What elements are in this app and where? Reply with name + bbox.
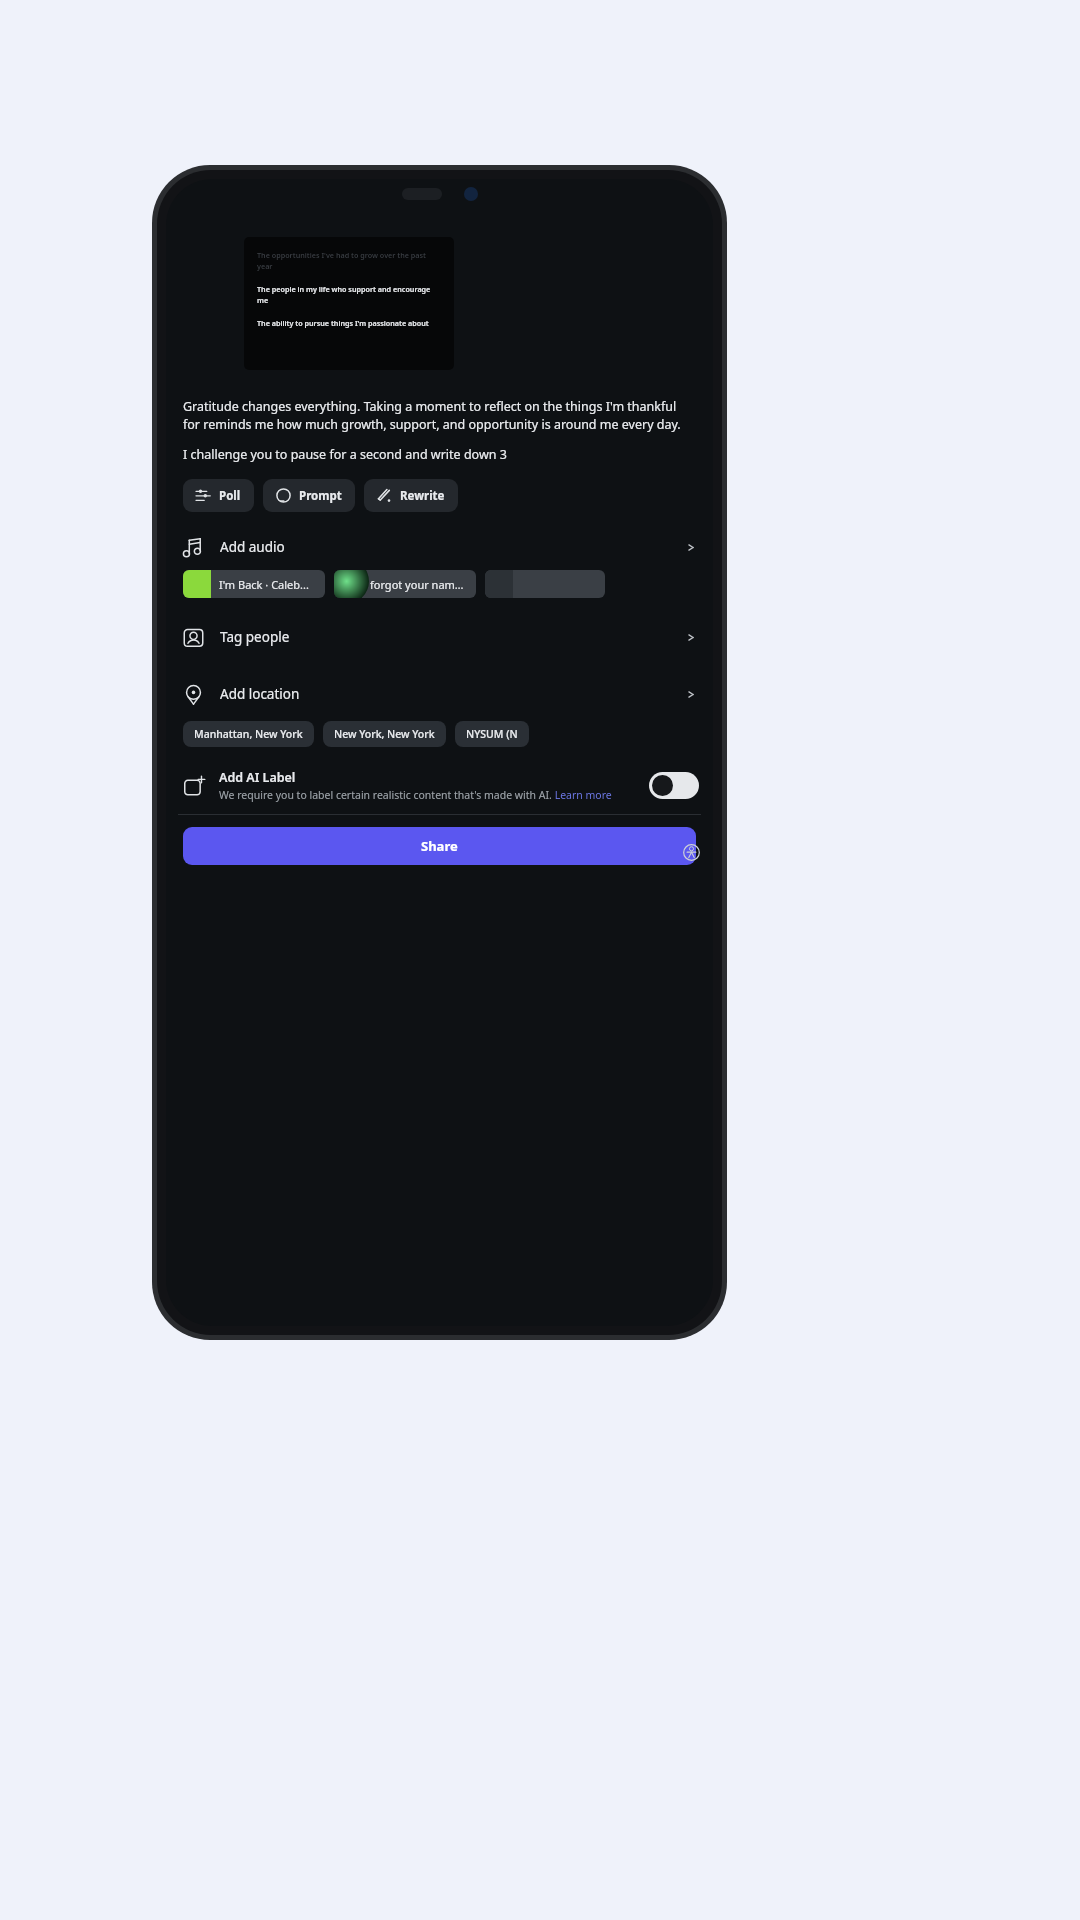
button[interactable]: Manhattan, New York (183, 721, 314, 747)
staticText: New York, New York (334, 727, 435, 741)
button[interactable]: New York, New York (323, 721, 446, 747)
button[interactable]: Share (183, 827, 696, 865)
button[interactable]: Rewrite (364, 479, 458, 512)
staticText: The ability to pursue things I'm passion… (257, 318, 429, 328)
staticText: Share (421, 837, 458, 855)
button[interactable]: Add location (166, 677, 713, 711)
staticText: Gratitude changes everything. Taking a m… (183, 398, 696, 433)
staticText: Tag people (220, 628, 684, 646)
button[interactable]: I'm Back · Caleb... (183, 570, 325, 598)
button[interactable]: Poll (183, 479, 254, 512)
staticText: forgot your name... (370, 577, 468, 592)
other: Accessibility (683, 844, 700, 861)
staticText: Add audio (220, 538, 684, 556)
button[interactable]: NYSUM (N (455, 721, 529, 747)
staticText: Manhattan, New York (194, 727, 303, 741)
button[interactable]: Add audio (166, 530, 713, 564)
staticText: The opportunities I've had to grow over … (257, 250, 442, 271)
staticText: The people in my life who support and en… (257, 284, 442, 305)
button[interactable]: Add AI Label toggle (649, 772, 699, 799)
staticText: I'm Back · Caleb... (219, 577, 309, 592)
staticText: Add location (220, 685, 684, 703)
staticText: Prompt (299, 488, 342, 504)
staticText: Rewrite (400, 488, 445, 504)
button[interactable]: forgot your name... (334, 570, 476, 598)
staticText: Poll (219, 488, 241, 504)
button[interactable] (485, 570, 605, 598)
staticText: NYSUM (N (466, 727, 518, 741)
staticText: Add AI Label (219, 769, 296, 786)
staticText: We require you to label certain realisti… (219, 788, 612, 802)
button[interactable]: Prompt (263, 479, 355, 512)
staticText: I challenge you to pause for a second an… (183, 446, 507, 463)
button[interactable]: Tag people (166, 620, 713, 654)
button[interactable]: Add AI Label (166, 767, 713, 810)
